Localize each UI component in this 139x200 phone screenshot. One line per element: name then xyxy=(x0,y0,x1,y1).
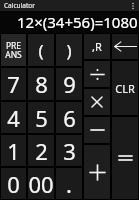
button[interactable]: 5 xyxy=(28,102,54,133)
staticText: CLR xyxy=(115,81,135,96)
button[interactable]: 0 xyxy=(1,168,26,199)
staticText: 00 xyxy=(28,169,54,199)
button[interactable]: CLR xyxy=(112,61,138,115)
button[interactable]: 8 xyxy=(28,68,54,100)
button[interactable]: Equals xyxy=(112,117,138,199)
staticText: 5 xyxy=(35,103,48,133)
staticText: 9 xyxy=(63,69,76,99)
staticText: ( xyxy=(38,39,44,62)
button[interactable]: PRE ANS xyxy=(1,34,26,66)
button[interactable]: 3 xyxy=(56,135,82,166)
staticText: 6 xyxy=(63,103,76,133)
button[interactable]: 1 xyxy=(1,135,26,166)
button[interactable]: ,R xyxy=(84,34,110,59)
button[interactable]: 00 xyxy=(28,168,54,199)
staticText: 0 xyxy=(7,169,20,199)
staticText: ,R xyxy=(92,39,102,54)
button[interactable]: ( xyxy=(28,34,54,66)
button[interactable]: Multiply xyxy=(84,89,110,115)
staticText: 3 xyxy=(63,136,76,166)
button[interactable]: Plus xyxy=(84,145,110,199)
button[interactable]: Minus xyxy=(84,117,110,143)
button[interactable]: Divide xyxy=(84,61,110,87)
button[interactable]: 9 xyxy=(56,68,82,100)
button[interactable]: . xyxy=(56,168,82,199)
staticText: Calculator xyxy=(4,1,35,10)
staticText: ) xyxy=(66,39,72,62)
staticText: 4 xyxy=(7,103,20,133)
staticText: 7 xyxy=(7,69,20,99)
button[interactable]: More options xyxy=(127,0,139,11)
staticText: PRE ANS xyxy=(5,40,22,60)
button[interactable]: 6 xyxy=(56,102,82,133)
button[interactable]: 4 xyxy=(1,102,26,133)
button[interactable]: 2 xyxy=(28,135,54,166)
staticText: . xyxy=(66,169,72,199)
button[interactable]: Backspace xyxy=(112,34,138,59)
staticText: 12×(34+56)=1080 xyxy=(17,12,138,32)
staticText: 1 xyxy=(7,136,20,166)
staticText: 8 xyxy=(35,69,48,99)
button[interactable]: 7 xyxy=(1,68,26,100)
button[interactable]: ) xyxy=(56,34,82,66)
staticText: 2 xyxy=(35,136,48,166)
